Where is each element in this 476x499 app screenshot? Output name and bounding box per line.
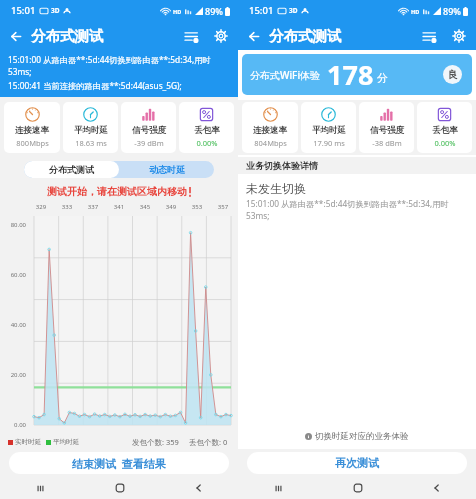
staticText: 丢包个数: 0 (189, 437, 228, 447)
button[interactable]: 平均时延 (301, 102, 356, 153)
staticText: 良 (448, 68, 458, 81)
staticText: 329 (28, 203, 54, 211)
button[interactable]: 丢包率 (179, 102, 234, 153)
staticText: 349 (158, 203, 184, 211)
staticText: 3D (51, 6, 60, 15)
staticText: 分布式测试 (31, 27, 104, 45)
button[interactable]: 动态时延 (119, 161, 214, 178)
staticText: 89% (205, 5, 223, 17)
button[interactable]: Recents (0, 477, 80, 499)
staticText: 平均时延 (74, 125, 108, 136)
button[interactable]: 分布式WiFi体验 (242, 54, 472, 95)
button[interactable]: Records (418, 25, 440, 47)
button[interactable]: 连接速率 (4, 102, 60, 153)
staticText: 17.90 ms (313, 138, 345, 148)
staticText: 结束测试 查看结果 (72, 456, 166, 471)
button[interactable]: 丢包率 (417, 102, 472, 153)
staticText: 信号强度 (370, 125, 404, 136)
button[interactable]: Settings (448, 25, 470, 47)
staticText: 再次测试 (335, 456, 379, 470)
staticText: 平均时延 (312, 125, 346, 136)
button[interactable]: 信号强度 (359, 102, 414, 153)
staticText: 15:01:00 从路由器**:5d:44切换到路由器**:5d:34,用时53… (246, 198, 468, 222)
staticText: 信号强度 (132, 125, 166, 136)
button[interactable]: Settings (210, 25, 232, 47)
staticText: 89% (443, 5, 461, 17)
staticText: -38 dBm (372, 138, 402, 148)
staticText: 337 (80, 203, 106, 211)
staticText: 341 (106, 203, 132, 211)
staticText: 357 (210, 203, 236, 211)
staticText: 分 (377, 71, 388, 85)
staticText: 测试开始，请在测试区域内移动 (47, 185, 187, 198)
staticText: 15:00:41 当前连接的路由器**:5d:44(asus_5G); (8, 80, 182, 91)
staticText: 40.00 (10, 321, 26, 329)
staticText: 804Mbps (254, 138, 287, 148)
staticText: 0.00 (14, 421, 26, 429)
button[interactable]: Back (159, 477, 238, 499)
staticText: 15:01 (11, 4, 36, 17)
button[interactable]: 平均时延 (63, 102, 118, 153)
button[interactable]: 结束测试 查看结果 (9, 452, 229, 474)
staticText: 353 (184, 203, 210, 211)
button[interactable]: Home (80, 477, 159, 499)
staticText: -39 dBm (134, 138, 164, 148)
staticText: 15:01:00 从路由器**:5d:44切换到路由器**:5d:34,用时53… (8, 54, 232, 78)
staticText: 15:01 (249, 4, 274, 17)
staticText: HD (173, 8, 182, 15)
button[interactable]: Records (180, 25, 202, 47)
staticText: 连接速率 (253, 125, 287, 136)
staticText: 0.00% (434, 138, 456, 148)
staticText: 分布式测试 (269, 27, 342, 45)
staticText: 333 (54, 203, 80, 211)
staticText: 未发生切换 (246, 181, 306, 196)
button[interactable]: Home (318, 477, 397, 499)
staticText: 丢包率 (194, 125, 220, 136)
staticText: 发包个数: 359 (132, 437, 179, 447)
staticText: 20.00 (10, 371, 26, 379)
staticText: 178 (327, 56, 374, 93)
button[interactable]: 信号强度 (121, 102, 176, 153)
button[interactable]: Recents (238, 477, 318, 499)
button[interactable]: Back (5, 25, 27, 47)
staticText: HD (411, 8, 420, 15)
staticText: 800Mbps (16, 138, 49, 148)
staticText: 分布式WiFi体验 (250, 68, 321, 82)
staticText: 实时时延 (15, 438, 41, 446)
staticText: 业务切换体验详情 (246, 160, 318, 171)
button[interactable]: 再次测试 (247, 452, 467, 474)
staticText: 80.00 (10, 221, 26, 229)
staticText: 分布式测试 (49, 164, 94, 175)
staticText: 345 (132, 203, 158, 211)
staticText: 切换时延对应的业务体验 (315, 431, 409, 442)
staticText: 动态时延 (149, 164, 185, 175)
button[interactable]: 分布式测试 (24, 161, 119, 178)
button[interactable]: Back (397, 477, 476, 499)
staticText: 18.63 ms (75, 138, 107, 148)
staticText: 0.00% (196, 138, 218, 148)
button[interactable]: Back (243, 25, 265, 47)
staticText: 平均时延 (53, 438, 79, 446)
button[interactable]: 连接速率 (242, 102, 298, 153)
staticText: 3D (289, 6, 298, 15)
staticText: 丢包率 (432, 125, 458, 136)
staticText: 60.00 (10, 271, 26, 279)
staticText: 连接速率 (15, 125, 49, 136)
